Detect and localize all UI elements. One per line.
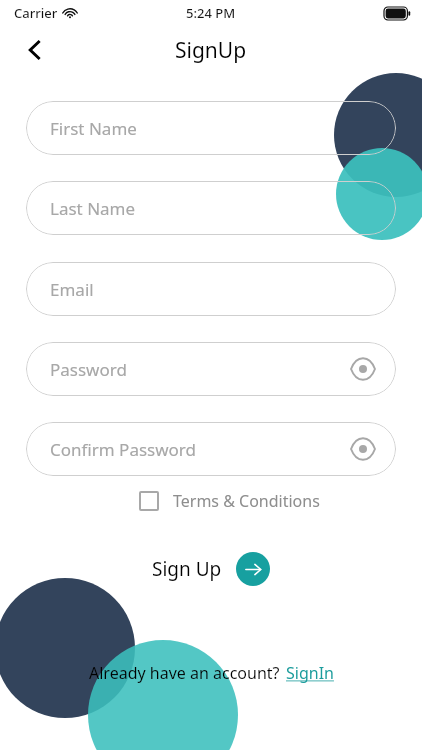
button[interactable]: Password — [26, 342, 396, 396]
staticText: Carrier — [14, 4, 58, 22]
other: Toggle password visibility — [350, 356, 376, 382]
button[interactable]: Terms & Conditions — [139, 490, 320, 512]
staticText: First Name — [50, 117, 137, 140]
staticText: Sign Up — [152, 556, 222, 582]
staticText: Email — [50, 278, 94, 301]
button[interactable]: First Name — [26, 101, 396, 155]
staticText: 5:24 PM — [186, 4, 236, 22]
staticText: SignUp — [175, 36, 247, 65]
staticText: Password — [50, 358, 127, 381]
staticText: SignIn — [286, 662, 334, 684]
staticText: Confirm Password — [50, 438, 196, 461]
button[interactable]: Last Name — [26, 181, 396, 235]
staticText: Last Name — [50, 197, 136, 220]
button[interactable]: Sign Up — [152, 552, 270, 586]
staticText: Already have an account? — [89, 662, 280, 684]
button[interactable]: Confirm Password — [26, 422, 396, 476]
button[interactable]: Email — [26, 262, 396, 316]
button[interactable]: SignIn — [286, 662, 334, 684]
staticText: Terms & Conditions — [173, 490, 320, 512]
other: Toggle password visibility — [350, 436, 376, 462]
button[interactable]: Back — [14, 29, 56, 71]
